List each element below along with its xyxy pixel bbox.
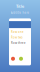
staticText: Row two <box>11 36 23 39</box>
staticText: Row one <box>11 30 24 34</box>
staticText: Subtitle here <box>10 11 29 14</box>
staticText: Row three <box>11 41 26 45</box>
staticText: Title <box>16 4 24 9</box>
